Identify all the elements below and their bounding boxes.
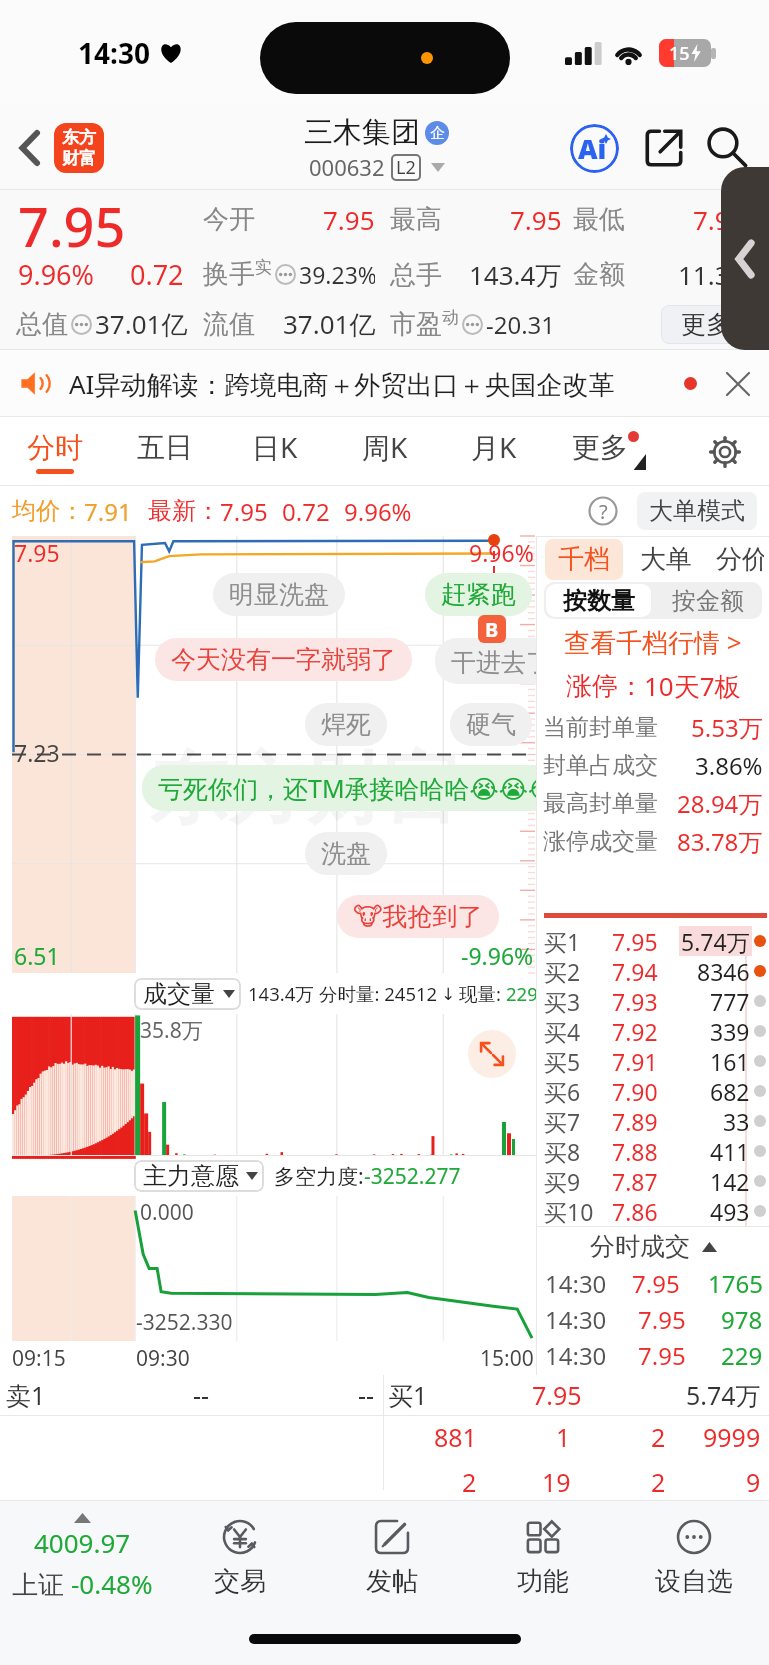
staticText: 分价 [716,543,764,576]
staticText: Ai [578,130,607,167]
button[interactable]: Back [12,115,112,181]
button[interactable]: 主力意愿 [134,1160,264,1192]
button[interactable]: 千档 [545,539,623,580]
button[interactable]: 买9 [537,1166,769,1196]
button[interactable]: 买4 [537,1016,769,1046]
staticText: 买2 [544,956,581,986]
button[interactable]: 日K [220,417,330,486]
button[interactable]: 买2 [537,956,769,986]
staticText: 焊死 [321,709,371,740]
staticText: 干进去了! [451,644,558,678]
button[interactable]: 功能 [467,1501,618,1613]
button[interactable]: 买8 [537,1136,769,1166]
staticText: 978 [721,1303,763,1336]
staticText: 14:30 [78,34,150,72]
button[interactable]: 干进去了! [435,638,574,684]
button[interactable]: 分时成交 [537,1227,769,1265]
staticText: 最高封单量 [543,789,658,818]
staticText: 当前封单量 [543,713,658,742]
staticText: 339 [710,1016,750,1046]
button[interactable]: 查看千档行情 > [537,619,769,664]
button[interactable]: 买1 [537,926,769,956]
staticText: 市盈 [390,308,442,341]
button[interactable]: 更多 [661,305,751,344]
staticText: 229 [506,981,536,1006]
staticText: 卖1 [6,1378,46,1412]
button[interactable]: 分价 [711,539,769,580]
button[interactable]: 发帖 [316,1501,467,1613]
staticText: -- [193,1378,210,1412]
staticText: 7.95 [220,495,268,528]
button[interactable]: 洗盘 [305,832,387,875]
button[interactable]: 分时 [0,417,110,486]
button[interactable]: 明显洗盘 [213,573,345,616]
staticText: 14:30 [545,1303,607,1336]
button[interactable]: 按数量 [546,584,651,617]
button[interactable]: 买10 [537,1196,769,1226]
button[interactable]: 焊死 [305,703,387,746]
button[interactable]: Chart settings [699,426,751,478]
button[interactable]: 交易 [164,1501,316,1613]
staticText: 买1 [388,1378,428,1412]
staticText: 买1 [544,926,581,956]
staticText: 493 [710,1196,750,1226]
staticText: 15:00 [480,1344,534,1373]
button[interactable]: AI assistant [569,123,619,173]
staticText: 主力意愿 [143,1161,239,1191]
staticText: 买4 [544,1016,581,1046]
staticText: 7.90 [612,1076,658,1106]
staticText: 分时量: 24512 [319,981,438,1006]
staticText: 33 [723,1106,750,1136]
staticText: 动 [442,307,459,328]
button[interactable]: Close [723,369,753,399]
button[interactable]: 五日 [110,417,220,486]
button[interactable]: 大单 [635,539,697,580]
button[interactable]: 买6 [537,1076,769,1106]
staticText: 大单模式 [649,496,745,526]
button[interactable]: 🐮我抢到了 [337,895,499,938]
staticText: 设自选 [655,1565,733,1598]
button[interactable]: Search [705,125,751,171]
button[interactable]: Fullscreen [468,1030,516,1078]
button[interactable]: 亏死你们，还TM承接哈哈哈😭😭😭 [142,765,574,811]
button[interactable]: 设自选 [618,1501,769,1613]
button[interactable]: 成交量 [134,978,241,1010]
button[interactable]: 买7 [537,1106,769,1136]
button[interactable]: 硬气 [450,703,532,746]
staticText: 最低 [573,203,625,236]
button[interactable]: 今天没有一字就弱了 [155,638,412,681]
staticText: 143.4万 [248,981,314,1006]
button[interactable]: 赶紧跑 [425,573,532,616]
staticText: -0.48% [71,1566,153,1601]
button[interactable]: Expand panel [721,167,769,350]
button[interactable]: Help [583,491,623,531]
staticText: 流值 [203,308,255,341]
staticText: 7.23 [14,737,60,768]
button[interactable]: 更多 [550,417,660,486]
button[interactable]: AI异动解读：跨境电商＋外贸出口＋央国企改革 [0,350,769,417]
button[interactable]: 4009.97 [0,1501,164,1613]
staticText: 28.94万 [677,787,763,820]
staticText: 买8 [544,1136,581,1166]
staticText: 09:30 [136,1344,190,1373]
staticText: 交易 [214,1565,266,1598]
staticText: 5.74万 [686,1378,761,1412]
staticText: 9 [746,1465,761,1499]
staticText: -- [358,1378,375,1412]
button[interactable]: 按金额 [653,582,762,619]
staticText: 买6 [544,1076,581,1106]
staticText: 发帖 [366,1565,418,1598]
staticText: 35.8万 [140,1016,203,1045]
button[interactable]: Share [641,125,687,171]
button[interactable]: 买3 [537,986,769,1016]
staticText: 1765 [708,1267,763,1300]
staticText: 5.74万 [681,926,750,956]
staticText: 涨停： [566,670,644,703]
button[interactable]: 大单模式 [637,492,757,530]
button[interactable]: 周K [330,417,440,486]
button[interactable]: 买5 [537,1046,769,1076]
staticText: 五日 [137,430,193,465]
button[interactable]: 月K [439,417,549,486]
staticText: 分时 [27,430,83,465]
staticText: 买7 [544,1106,581,1136]
